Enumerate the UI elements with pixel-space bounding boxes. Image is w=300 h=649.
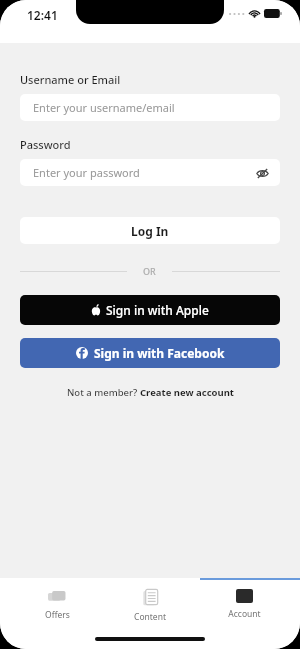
staticText: Offers — [45, 609, 70, 621]
staticText: Password — [20, 137, 71, 152]
staticText: Create new account — [140, 386, 234, 399]
button[interactable]: Log In — [20, 217, 280, 244]
button[interactable]: Content — [113, 587, 187, 625]
staticText: Log In — [131, 223, 169, 239]
staticText: Content — [134, 611, 166, 623]
button[interactable]: Enter your username/email — [20, 94, 280, 121]
button[interactable]: Sign in with Facebook — [20, 338, 280, 368]
button[interactable]: Offers — [20, 587, 94, 623]
staticText: Enter your username/email — [33, 100, 175, 115]
staticText: Account — [228, 608, 261, 620]
staticText: Sign in with Apple — [106, 302, 209, 318]
staticText: Username or Email — [20, 72, 121, 87]
staticText: Enter your password — [33, 165, 140, 180]
button[interactable]: Account — [207, 587, 281, 622]
button[interactable]: Sign in with Apple — [20, 295, 280, 325]
staticText: Not a member? — [67, 386, 140, 399]
staticText: 12:41 — [27, 7, 58, 23]
staticText: OR — [143, 265, 156, 277]
button[interactable]: Enter your password — [20, 159, 280, 186]
staticText: Sign in with Facebook — [94, 345, 225, 361]
button[interactable]: Show password — [253, 164, 271, 182]
button[interactable]: Not a member? — [20, 386, 280, 399]
